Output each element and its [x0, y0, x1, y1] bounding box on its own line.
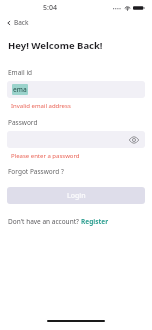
staticText: Register: [81, 217, 109, 226]
staticText: Don't have an account?: [8, 217, 81, 226]
button[interactable]: Back: [4, 16, 31, 29]
staticText: Login: [67, 191, 86, 201]
button[interactable]: Forgot Password ?: [8, 167, 64, 176]
staticText: Password: [8, 118, 38, 127]
button[interactable]: Show password: [128, 134, 140, 146]
staticText: ema: [13, 85, 27, 94]
button[interactable]: Register: [81, 217, 109, 226]
staticText: Invalid email address: [11, 102, 71, 110]
button[interactable]: Login: [7, 187, 145, 204]
staticText: Email id: [8, 68, 33, 77]
button[interactable]: ema: [7, 81, 145, 98]
staticText: Back: [14, 18, 29, 27]
button[interactable]: Show password: [7, 131, 145, 148]
staticText: Please enter a password: [11, 152, 80, 160]
staticText: 5:04: [43, 3, 57, 13]
staticText: Hey! Welcome Back!: [8, 39, 103, 52]
